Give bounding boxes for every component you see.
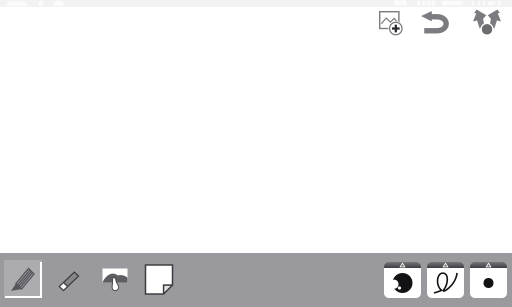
button[interactable]: Brush size [470, 262, 507, 298]
button[interactable]: Colour [384, 262, 421, 298]
button[interactable]: Marker [49, 261, 87, 299]
button[interactable]: New page [140, 260, 178, 298]
button[interactable]: Share [468, 3, 506, 41]
button[interactable]: Undo [415, 3, 453, 41]
button[interactable]: Pencil [4, 260, 42, 298]
button[interactable]: Insert photo [372, 4, 410, 42]
button[interactable]: Smudge [96, 261, 134, 299]
button[interactable]: Stroke style [427, 262, 464, 298]
